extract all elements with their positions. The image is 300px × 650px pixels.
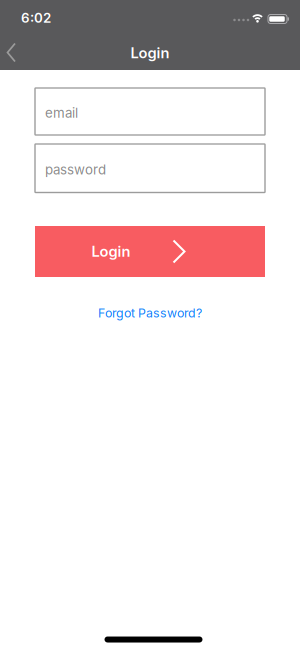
staticText: Login [130,44,169,62]
button[interactable]: Login [35,226,265,277]
staticText: 6:02 [21,10,51,26]
staticText: email [45,105,78,121]
staticText: password [45,162,106,178]
staticText: Forgot Password? [98,305,202,320]
button[interactable]: password [35,144,265,192]
button[interactable]: email [35,88,265,135]
staticText: Login [91,243,130,260]
button[interactable]: Forgot Password? [98,305,202,320]
button[interactable] [0,0,300,70]
